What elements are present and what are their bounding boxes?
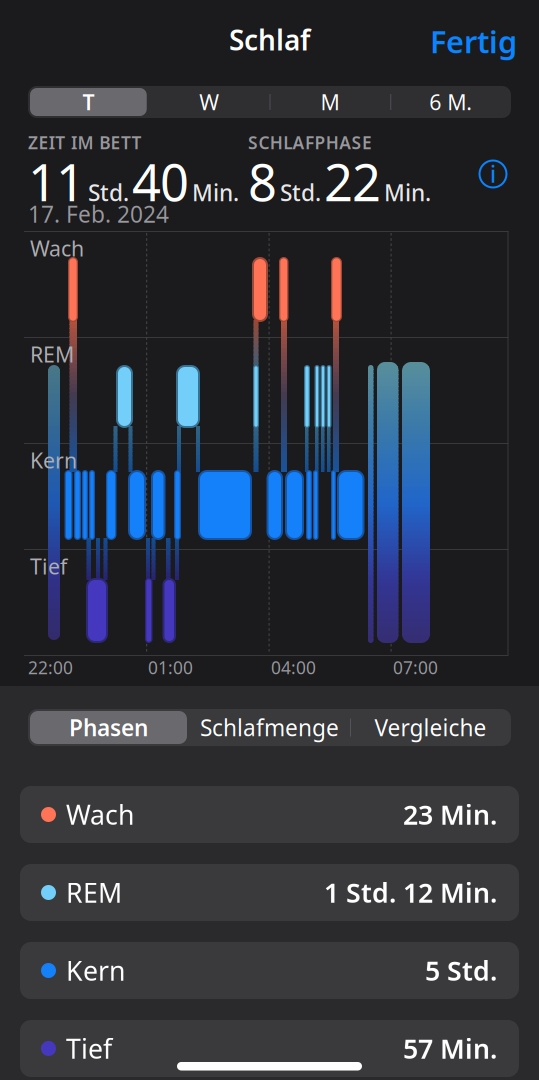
button[interactable]: Tief (20, 1020, 519, 1077)
button[interactable]: Wach (20, 786, 519, 843)
staticText: 07:00 (393, 656, 438, 679)
button[interactable]: Phasen (28, 709, 189, 746)
staticText: REM (30, 340, 74, 368)
button[interactable]: Schlafmenge (189, 709, 350, 746)
button[interactable]: Fertig (430, 21, 517, 62)
button[interactable]: REM (20, 864, 519, 921)
staticText: 1 Std. 12 Min. (324, 875, 497, 910)
staticText: 01:00 (148, 656, 193, 679)
staticText: T (82, 88, 94, 116)
staticText: Vergleiche (374, 712, 486, 742)
staticText: 6 M. (429, 88, 472, 116)
staticText: Wach (30, 234, 84, 262)
staticText: Tief (30, 552, 67, 580)
staticText: Wach (66, 797, 134, 832)
staticText: 57 Min. (403, 1031, 497, 1066)
button[interactable]: 6 M. (390, 86, 511, 118)
button[interactable]: Vergleiche (350, 709, 511, 746)
staticText: 17. Feb. 2024 (28, 199, 169, 229)
staticText: 40 (132, 148, 189, 215)
staticText: Kern (30, 446, 77, 474)
staticText: 5 Std. (425, 953, 497, 988)
staticText: Std. (88, 177, 129, 208)
staticText: 04:00 (271, 656, 316, 679)
button[interactable]: W (149, 86, 270, 118)
button[interactable]: T (28, 86, 149, 118)
button[interactable]: Info (478, 159, 508, 189)
button[interactable]: Kern (20, 942, 519, 999)
staticText: 23 Min. (403, 797, 497, 832)
staticText: Tief (66, 1031, 112, 1066)
staticText: 11 (28, 148, 85, 215)
staticText: REM (66, 875, 122, 910)
staticText: Fertig (430, 21, 517, 62)
staticText: Schlafmenge (200, 712, 339, 742)
staticText: Kern (66, 953, 125, 988)
staticText: Phasen (69, 712, 148, 742)
staticText: i (490, 159, 496, 189)
staticText: 22 (324, 148, 381, 215)
staticText: SCHLAFPHASE (248, 131, 372, 154)
staticText: Schlaf (229, 21, 310, 58)
staticText: W (199, 88, 219, 116)
button[interactable]: M (269, 86, 390, 118)
staticText: ZEIT IM BETT (28, 131, 141, 154)
staticText: 8 (248, 148, 277, 215)
staticText: Std. (280, 177, 321, 208)
staticText: M (320, 88, 339, 116)
staticText: Min. (192, 177, 239, 208)
staticText: 22:00 (28, 656, 73, 679)
staticText: Min. (384, 177, 431, 208)
